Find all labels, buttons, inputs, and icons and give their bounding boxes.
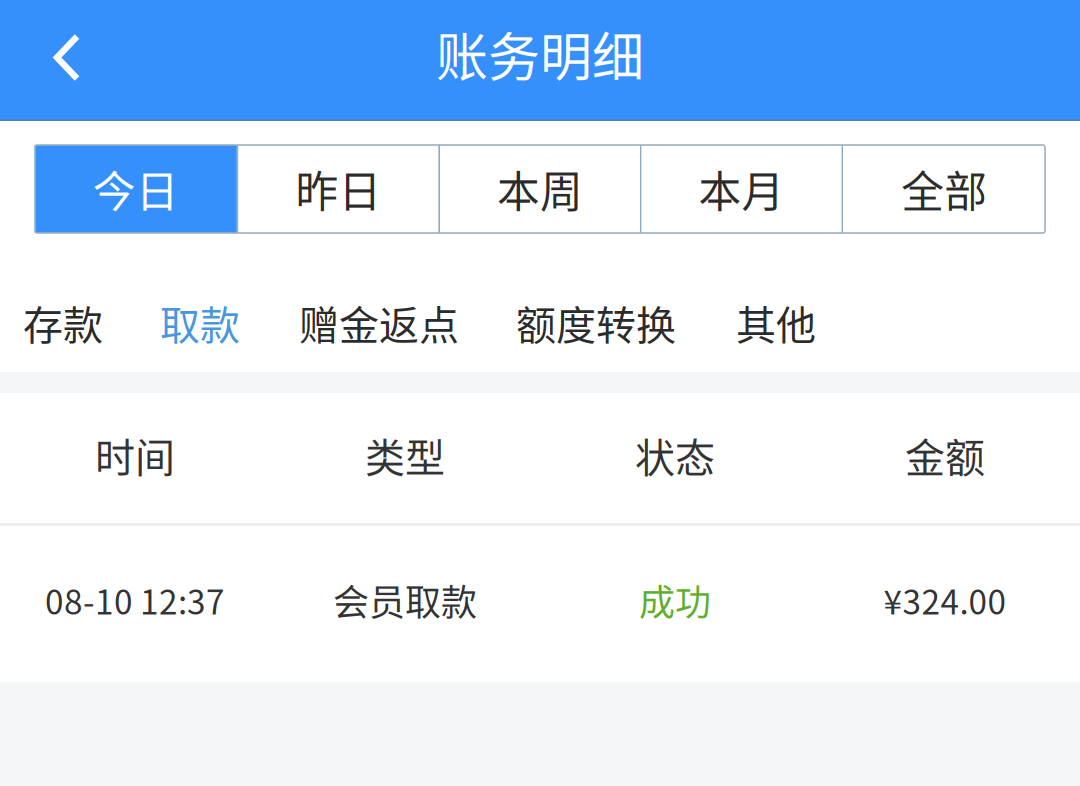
staticText: 赠金返点 [299, 293, 459, 351]
button[interactable]: 全部 [843, 145, 1045, 233]
staticText: 08-10 12:37 [45, 576, 225, 624]
staticText: 账务明细 [436, 16, 644, 91]
button[interactable]: 今日 [35, 145, 237, 233]
staticText: 额度转换 [516, 293, 676, 351]
button[interactable]: 08-10 12:37 [0, 526, 1080, 682]
staticText: 类型 [365, 426, 445, 484]
button[interactable]: 昨日 [238, 145, 438, 233]
staticText: 本月 [699, 158, 785, 220]
staticText: 今日 [93, 158, 179, 220]
staticText: 金额 [905, 426, 985, 484]
button[interactable]: Back [0, 0, 116, 121]
staticText: 存款 [23, 293, 103, 351]
staticText: 成功 [639, 574, 711, 626]
staticText: 会员取款 [333, 574, 477, 626]
button[interactable]: 赠金返点 [299, 280, 459, 364]
staticText: ¥324.00 [883, 576, 1006, 624]
staticText: 全部 [901, 158, 987, 220]
staticText: 本周 [497, 158, 583, 220]
button[interactable]: 额度转换 [516, 280, 676, 364]
staticText: 其他 [736, 293, 816, 351]
button[interactable]: 本月 [642, 145, 842, 233]
button[interactable]: 本周 [440, 145, 640, 233]
staticText: 状态 [635, 426, 715, 484]
button[interactable]: 存款 [23, 280, 103, 364]
staticText: 取款 [160, 293, 240, 351]
staticText: 昨日 [295, 158, 381, 220]
button[interactable]: 其他 [736, 280, 816, 364]
staticText: 时间 [95, 426, 175, 484]
button[interactable]: 取款 [160, 280, 240, 364]
